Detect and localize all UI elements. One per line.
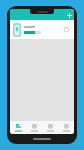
button[interactable]: Add device — [65, 11, 74, 20]
button[interactable]: Record — [42, 121, 58, 134]
button[interactable]: Settings — [58, 121, 74, 134]
button[interactable]: Device options — [10, 20, 74, 39]
button[interactable]: Devices — [10, 121, 26, 134]
button[interactable]: Device options — [62, 25, 71, 34]
button[interactable]: Sensors — [26, 121, 42, 134]
